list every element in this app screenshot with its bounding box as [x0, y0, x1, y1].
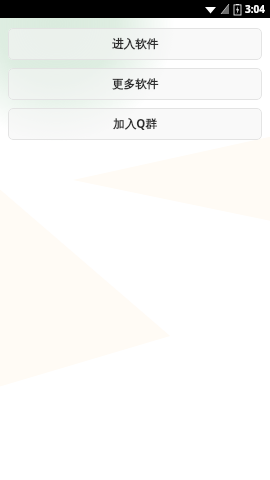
button[interactable]: 更多软件	[8, 68, 262, 100]
staticText: 进入软件	[112, 37, 158, 51]
button[interactable]: 加入Q群	[8, 108, 262, 140]
staticText: 加入Q群	[113, 116, 157, 132]
staticText: 3:04	[245, 2, 265, 16]
staticText: 更多软件	[112, 77, 158, 91]
button[interactable]: 进入软件	[8, 28, 262, 60]
